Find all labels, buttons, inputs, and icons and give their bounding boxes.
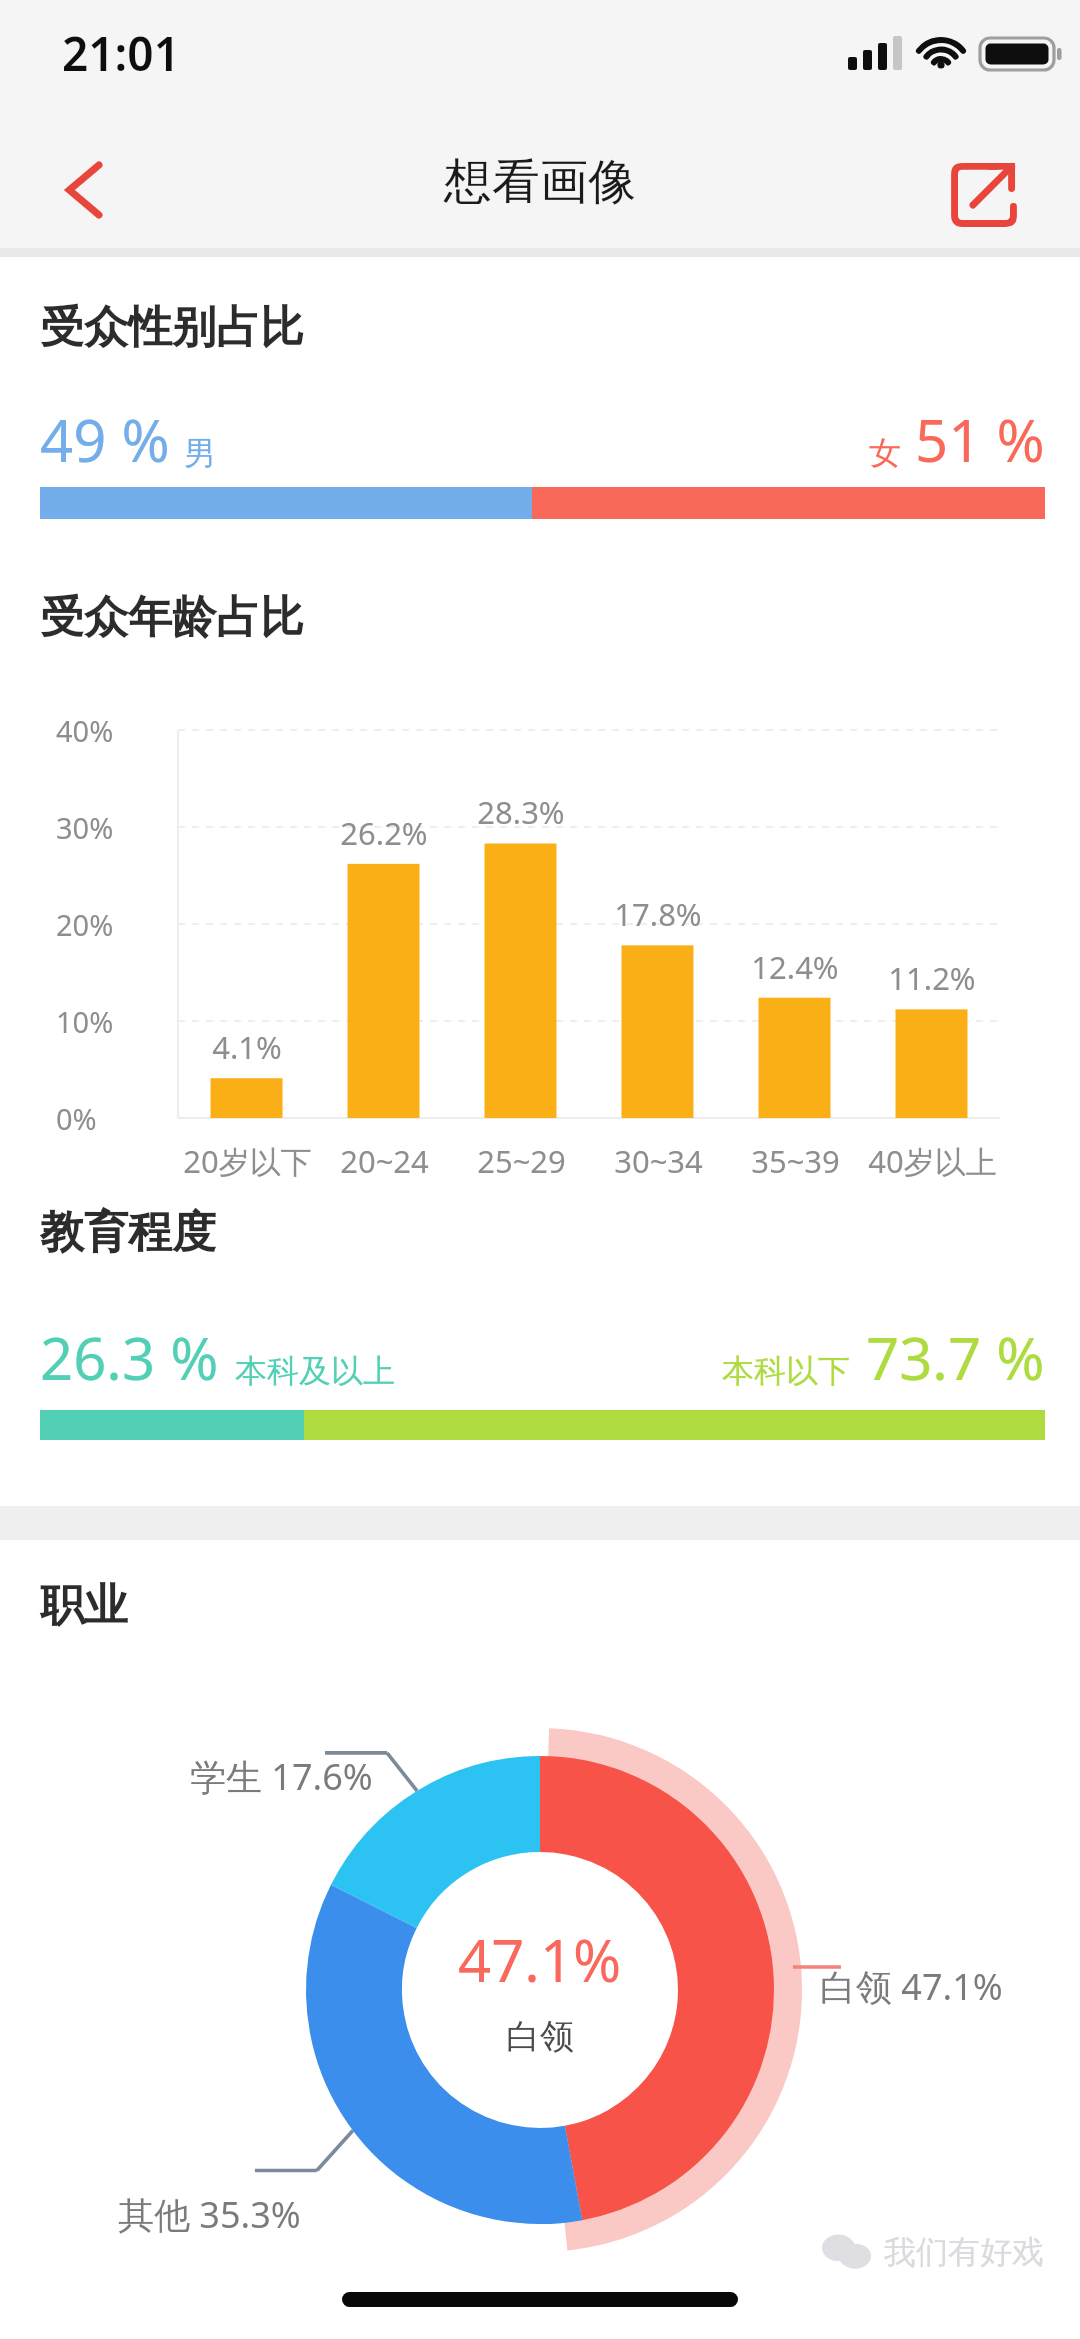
staticText: 职业	[40, 1578, 128, 1633]
staticText: 40岁以上	[868, 1140, 997, 1182]
staticText: 女	[869, 433, 901, 473]
staticText: 11.2%	[888, 957, 976, 999]
staticText: 白领	[506, 2015, 574, 2058]
staticText: 0%	[56, 1099, 97, 1138]
staticText: 40%	[56, 711, 114, 750]
staticText: 47.1%	[458, 1920, 622, 1999]
button[interactable]: Back	[22, 138, 126, 242]
staticText: 想看画像	[444, 152, 636, 212]
staticText: 17.8%	[614, 893, 702, 935]
staticText: 受众性别占比	[40, 300, 304, 355]
staticText: 26.2%	[340, 812, 428, 854]
staticText: 10%	[56, 1002, 114, 1041]
staticText: 25~29	[477, 1140, 566, 1182]
staticText: 30%	[56, 808, 114, 847]
staticText: 26.3 %	[40, 1318, 219, 1397]
staticText: 51 %	[915, 400, 1045, 479]
staticText: 男	[184, 433, 216, 473]
staticText: 本科及以上	[235, 1351, 395, 1391]
staticText: 本科以下	[722, 1351, 850, 1391]
staticText: 35~39	[751, 1140, 840, 1182]
staticText: 21:01	[62, 22, 180, 85]
staticText: 受众年龄占比	[40, 590, 304, 645]
staticText: 4.1%	[212, 1026, 282, 1068]
staticText: 12.4%	[751, 946, 839, 988]
staticText: 学生 17.6%	[190, 1752, 373, 1801]
button[interactable]: Share	[938, 148, 1030, 240]
staticText: 20~24	[340, 1140, 429, 1182]
staticText: 我们有好戏	[884, 2232, 1044, 2272]
staticText: 28.3%	[477, 791, 565, 833]
staticText: 49 %	[40, 400, 170, 479]
staticText: 教育程度	[40, 1205, 216, 1260]
staticText: 白领 47.1%	[820, 1962, 1003, 2011]
staticText: 其他 35.3%	[118, 2190, 301, 2239]
staticText: 73.7 %	[866, 1318, 1045, 1397]
staticText: 20%	[56, 905, 114, 944]
staticText: 20岁以下	[183, 1140, 312, 1182]
staticText: 30~34	[614, 1140, 703, 1182]
